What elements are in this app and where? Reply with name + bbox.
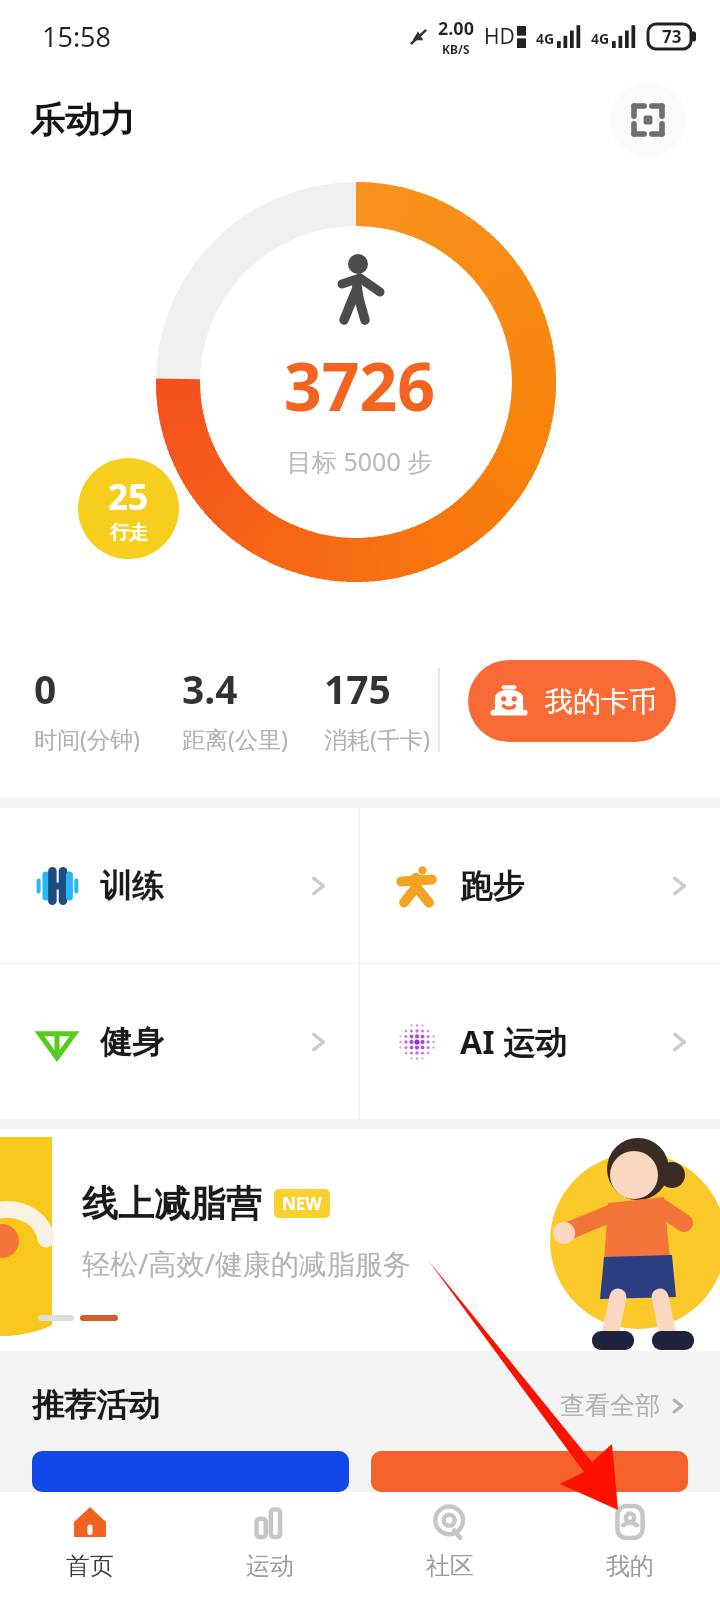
staticText: 轻松/高效/健康的减脂服务 [82,1244,411,1282]
button[interactable]: 查看全部 [560,1390,688,1421]
staticText: 跑步 [460,866,524,906]
staticText: 行走 [110,521,148,545]
staticText: 社区 [426,1551,474,1581]
staticText: 健身 [100,1022,164,1062]
staticText: 0 [34,662,57,715]
staticText: 3.4 [182,662,238,715]
button[interactable]: 首页 [0,1492,180,1590]
button[interactable]: 训练 [0,808,359,963]
staticText: 我的 [606,1551,654,1581]
button[interactable]: 社区 [360,1492,540,1590]
staticText: HD [484,22,515,51]
staticText: 我的卡币 [545,684,657,719]
button[interactable] [32,1451,349,1492]
staticText: 4G [536,29,555,48]
staticText: 73 [662,25,682,48]
button[interactable]: 25 [78,458,179,559]
button[interactable]: 跑步 [360,808,720,963]
staticText: 消耗(千卡) [324,723,430,754]
staticText: 时间(分钟) [34,723,140,754]
staticText: 乐动力 [30,98,135,142]
staticText: 首页 [66,1551,114,1581]
button[interactable]: 我的卡币 [468,660,676,742]
staticText: 4G [591,29,610,48]
staticText: 15:58 [42,18,112,55]
staticText: 运动 [246,1551,294,1581]
staticText: 距离(公里) [182,723,288,754]
button[interactable]: 我的 [540,1492,720,1590]
staticText: 目标 5000 步 [287,444,433,478]
button[interactable]: 运动 [180,1492,360,1590]
staticText: KB/S [442,41,470,57]
staticText: AI 运动 [460,1020,567,1064]
staticText: 推荐活动 [32,1385,160,1425]
staticText: 25 [108,473,149,521]
button[interactable]: 健身 [0,964,359,1119]
button[interactable] [371,1451,688,1492]
staticText: 175 [324,662,391,715]
staticText: 3726 [284,340,436,430]
button[interactable]: Scan QR code [610,82,686,158]
staticText: NEW [282,1192,322,1215]
staticText: 线上减脂营 [82,1181,262,1226]
staticText: 训练 [100,866,164,906]
staticText: 2.00 [438,16,474,41]
staticText: 查看全部 [560,1390,660,1421]
button[interactable]: AI 运动 [360,964,720,1119]
